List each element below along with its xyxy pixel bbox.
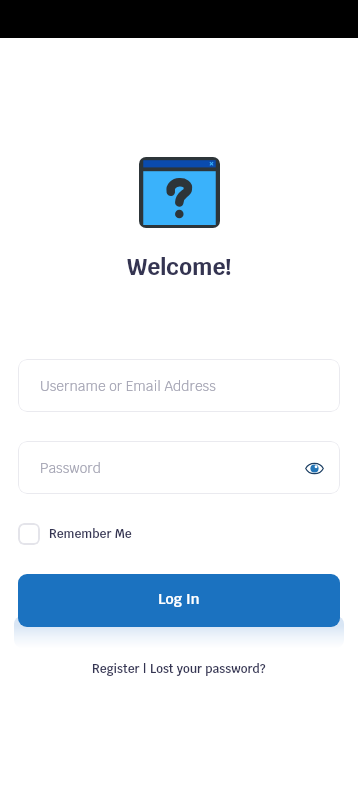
staticText: Log In — [158, 589, 200, 608]
staticText: | — [140, 661, 150, 677]
staticText: Remember Me — [49, 526, 132, 542]
button[interactable]: Remember Me — [18, 523, 132, 545]
button[interactable]: Username or Email Address — [18, 359, 340, 412]
button[interactable]: Log In — [18, 574, 340, 627]
staticText: Welcome! — [127, 252, 232, 281]
staticText: Username or Email Address — [40, 377, 216, 395]
button[interactable]: Register — [92, 661, 140, 677]
button[interactable]: Lost your password? — [150, 661, 266, 677]
staticText: Password — [40, 459, 101, 477]
button[interactable]: Password — [18, 441, 340, 494]
button[interactable]: Show password — [301, 455, 327, 481]
